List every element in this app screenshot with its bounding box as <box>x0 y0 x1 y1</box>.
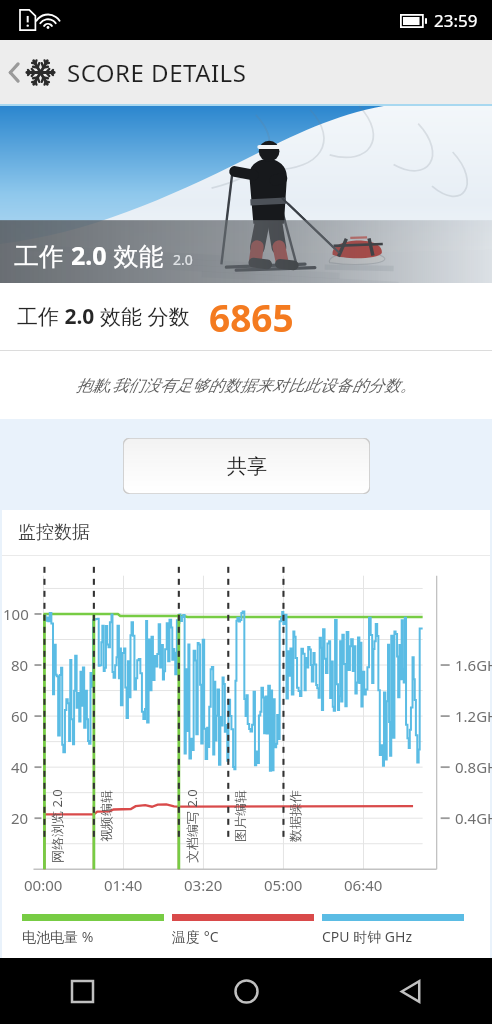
staticText: 效能 <box>107 238 164 272</box>
staticText: 2.0 <box>59 302 100 331</box>
staticText: 00:00 <box>24 875 63 895</box>
button[interactable]: CPU 时钟 GHz <box>322 914 464 946</box>
button[interactable]: 抱歉,我们没有足够的数据来对比此设备的分数。 <box>0 351 492 419</box>
staticText: 网络浏览 2.0 <box>48 789 66 863</box>
other: Back <box>7 59 22 86</box>
button[interactable]: 温度 °C <box>172 914 314 946</box>
staticText: 2.0 <box>173 250 193 269</box>
button[interactable]: 工作 <box>0 106 492 283</box>
staticText: 03:20 <box>184 875 223 895</box>
staticText: 6865 <box>209 292 294 342</box>
staticText: 工作 <box>17 304 59 330</box>
staticText: 2.0 <box>71 238 107 272</box>
staticText: 电池电量 % <box>22 927 94 946</box>
staticText: 100 <box>3 604 29 624</box>
staticText: 06:40 <box>344 875 383 895</box>
button[interactable]: 工作 <box>0 283 492 350</box>
staticText: 80 <box>11 655 29 675</box>
staticText: 效能 分数 <box>100 302 190 331</box>
button[interactable]: Back <box>0 40 492 104</box>
staticText: 0.4GHz <box>455 808 492 828</box>
staticText: 1.6GHz <box>455 655 492 675</box>
button[interactable]: 共享 <box>123 438 370 494</box>
staticText: 40 <box>11 757 29 777</box>
staticText: 共享 <box>227 454 267 479</box>
staticText: CPU 时钟 GHz <box>322 927 412 946</box>
staticText: 数据操作 <box>287 790 303 842</box>
staticText: 图片编辑 <box>232 790 248 842</box>
staticText: 0.8GHz <box>455 757 492 777</box>
staticText: 01:40 <box>104 875 143 895</box>
staticText: 监控数据 <box>18 521 90 544</box>
staticText: 20 <box>11 808 29 828</box>
staticText: 60 <box>11 706 29 726</box>
staticText: 文档编写 2.0 <box>183 789 201 863</box>
button[interactable]: 监控数据 <box>2 510 490 555</box>
staticText: 工作 <box>14 238 71 272</box>
button[interactable]: 电池电量 % <box>22 914 164 946</box>
staticText: 23:59 <box>434 9 478 32</box>
staticText: 抱歉,我们没有足够的数据来对比此设备的分数。 <box>76 374 417 396</box>
button[interactable]: Home <box>164 958 328 1024</box>
staticText: 温度 °C <box>172 927 219 946</box>
button[interactable]: Back <box>328 958 492 1024</box>
staticText: 视频编辑 <box>98 790 114 842</box>
staticText: 05:00 <box>264 875 303 895</box>
staticText: 1.2GHz <box>455 706 492 726</box>
other: Work 2.0 <box>25 57 56 88</box>
button[interactable]: Recent apps <box>0 958 164 1024</box>
button[interactable]: 100 <box>2 556 490 914</box>
staticText: SCORE DETAILS <box>67 56 247 89</box>
